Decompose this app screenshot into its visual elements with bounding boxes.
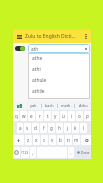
staticText: q [15,113,18,119]
staticText: j [67,125,69,131]
staticText: h [58,125,61,131]
button[interactable]: e [28,111,35,121]
button[interactable]: u [60,111,67,121]
button[interactable]: q [13,111,19,121]
staticText: Done [81,150,90,155]
button[interactable]: Clear search [84,47,88,51]
staticText: r [39,113,41,119]
staticText: a [19,125,22,131]
button[interactable]: d [32,123,39,133]
button[interactable]: f [40,123,47,133]
staticText: u [62,113,65,119]
button[interactable]: s [24,123,31,133]
button[interactable]: Emoji [13,147,20,158]
button[interactable]: o [76,111,83,121]
button[interactable]: Menu [13,30,25,43]
button[interactable]: j [64,123,71,133]
button[interactable]: i [68,111,75,121]
button[interactable]: g [48,123,55,133]
staticText: . [70,150,72,156]
button[interactable]: r [36,111,43,121]
staticText: t [47,113,49,119]
staticText: s [26,125,29,131]
button[interactable]: x [33,135,40,145]
staticText: athi [32,66,41,73]
staticText: athule [32,77,47,84]
button[interactable]: . [68,147,74,158]
staticText: Zulu to English Dicti... [25,33,81,40]
button[interactable]: p [84,111,91,121]
staticText: p [86,113,89,119]
button[interactable]: c [41,135,48,145]
staticText: w [22,113,26,119]
staticText: yah [30,103,37,108]
button[interactable]: Translate [13,101,26,110]
staticText: n [67,137,70,143]
staticText: ?123 [21,150,29,155]
staticText: , [32,150,34,156]
button[interactable]: ath [28,44,90,53]
button[interactable]: athe [28,53,90,64]
button[interactable]: , [30,147,36,158]
staticText: v [51,137,54,143]
button[interactable]: n [65,135,72,145]
staticText: x [35,137,38,143]
button[interactable]: v [49,135,56,145]
staticText: o [78,113,81,119]
button[interactable]: l [80,123,87,133]
button[interactable]: a [17,123,23,133]
staticText: k [74,125,77,131]
button[interactable]: Shift [13,135,24,145]
button[interactable]: athile [28,86,90,97]
button[interactable]: ?123 [21,147,29,158]
staticText: d [34,125,37,131]
staticText: y [54,113,57,119]
button[interactable]: b [57,135,64,145]
button[interactable]: Swap languages [15,46,25,51]
staticText: g [50,125,53,131]
staticText: b [59,137,62,143]
button[interactable]: w [20,111,27,121]
button[interactable]: yah [26,101,41,110]
button[interactable]: Athu [75,101,91,110]
button[interactable]: Backspace [81,135,91,145]
staticText: Athu [79,103,88,108]
button[interactable]: m [73,135,80,145]
button[interactable]: k [72,123,79,133]
button[interactable]: z [25,135,32,145]
staticText: i [71,113,73,119]
staticText: l [83,125,85,131]
button[interactable]: bach [42,101,57,110]
button[interactable]: athule [28,75,90,86]
button[interactable]: h [56,123,63,133]
button[interactable]: More options [81,30,91,43]
staticText: athe [32,55,43,62]
staticText: m [74,137,79,143]
staticText: c [43,137,46,143]
button[interactable]: y [52,111,59,121]
button[interactable]: Done [75,147,91,158]
button[interactable]: t [44,111,51,121]
button[interactable]: athi [28,64,90,75]
button[interactable]: math [58,101,74,110]
staticText: athile [32,88,45,95]
staticText: bach [45,103,54,108]
staticText: ath [31,46,39,52]
staticText: f [43,125,45,131]
staticText: math [61,103,71,108]
staticText: e [30,113,33,119]
staticText: z [27,137,30,143]
